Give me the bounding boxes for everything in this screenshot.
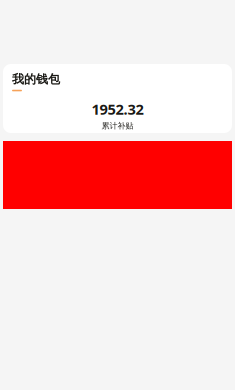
staticText: 累计补贴: [101, 121, 133, 131]
staticText: 我的钱包: [12, 72, 60, 87]
staticText: 1952.32: [91, 99, 143, 119]
